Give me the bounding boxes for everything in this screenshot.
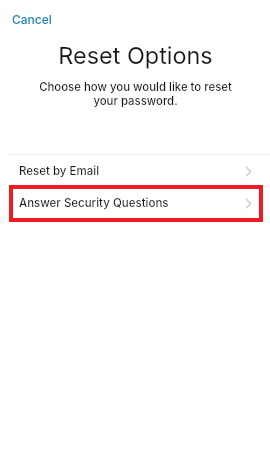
staticText: Cancel [12,12,52,27]
staticText: Answer Security Questions [19,196,169,210]
button[interactable]: Answer Security Questions [0,187,270,219]
staticText: Reset by Email [19,164,100,178]
staticText: Reset Options [58,41,213,69]
button[interactable]: Cancel [8,8,56,31]
button[interactable]: Reset by Email [0,155,270,187]
staticText: Choose how you would like to reset your … [39,80,232,108]
